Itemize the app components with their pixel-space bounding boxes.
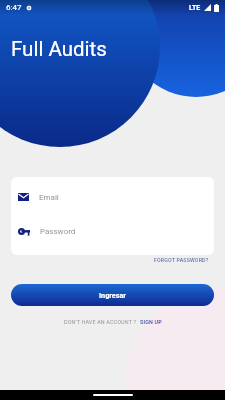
button[interactable]: Email: [18, 185, 214, 209]
staticText: 6:47: [6, 3, 22, 12]
staticText: Ingresar: [99, 291, 126, 299]
staticText: Full Audits: [11, 37, 107, 61]
staticText: LTE: [189, 4, 201, 12]
button[interactable]: Password: [18, 219, 214, 243]
button[interactable]: Ingresar: [11, 284, 214, 306]
staticText: Email: [39, 193, 59, 202]
button[interactable]: SIGN UP: [140, 319, 162, 325]
staticText: SIGN UP: [140, 319, 162, 325]
staticText: Password: [40, 227, 76, 236]
button[interactable]: FORGOT PASSWORD?: [154, 257, 209, 263]
staticText: DON'T HAVE AN ACCOUNT ?: [64, 319, 137, 325]
staticText: FORGOT PASSWORD?: [154, 257, 209, 263]
